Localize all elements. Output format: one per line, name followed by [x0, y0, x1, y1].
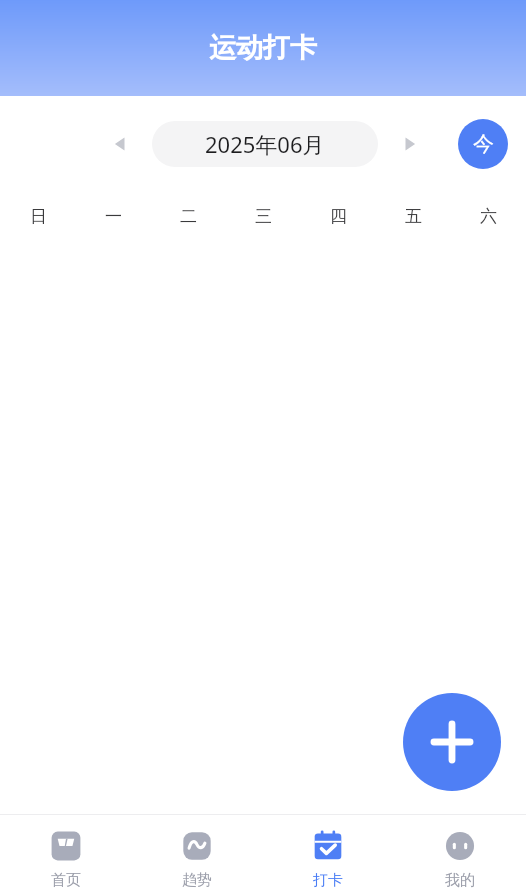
staticText: 我的 [445, 871, 475, 890]
staticText: 首页 [51, 871, 81, 890]
staticText: 今 [473, 131, 494, 157]
staticText: 趋势 [182, 871, 212, 890]
staticText: 四 [330, 206, 347, 227]
button[interactable]: 上个月 [98, 122, 142, 166]
staticText: 六 [480, 206, 497, 227]
staticText: 二 [180, 206, 197, 227]
staticText: 2025年06月 [205, 129, 325, 159]
staticText: 五 [405, 206, 422, 227]
button[interactable]: 首页 [0, 815, 131, 894]
staticText: 三 [255, 206, 272, 227]
button[interactable]: 趋势 [131, 815, 262, 894]
staticText: 打卡 [313, 871, 343, 890]
staticText: 运动打卡 [209, 31, 317, 65]
button[interactable]: 打卡 [262, 815, 394, 894]
button[interactable]: 添加打卡 [403, 693, 501, 791]
button[interactable]: 下个月 [388, 122, 432, 166]
button[interactable]: 2025年06月 [152, 121, 378, 167]
staticText: 日 [30, 206, 47, 227]
button[interactable]: 我的 [394, 815, 526, 894]
button[interactable]: 今 [458, 119, 508, 169]
staticText: 一 [105, 206, 122, 227]
